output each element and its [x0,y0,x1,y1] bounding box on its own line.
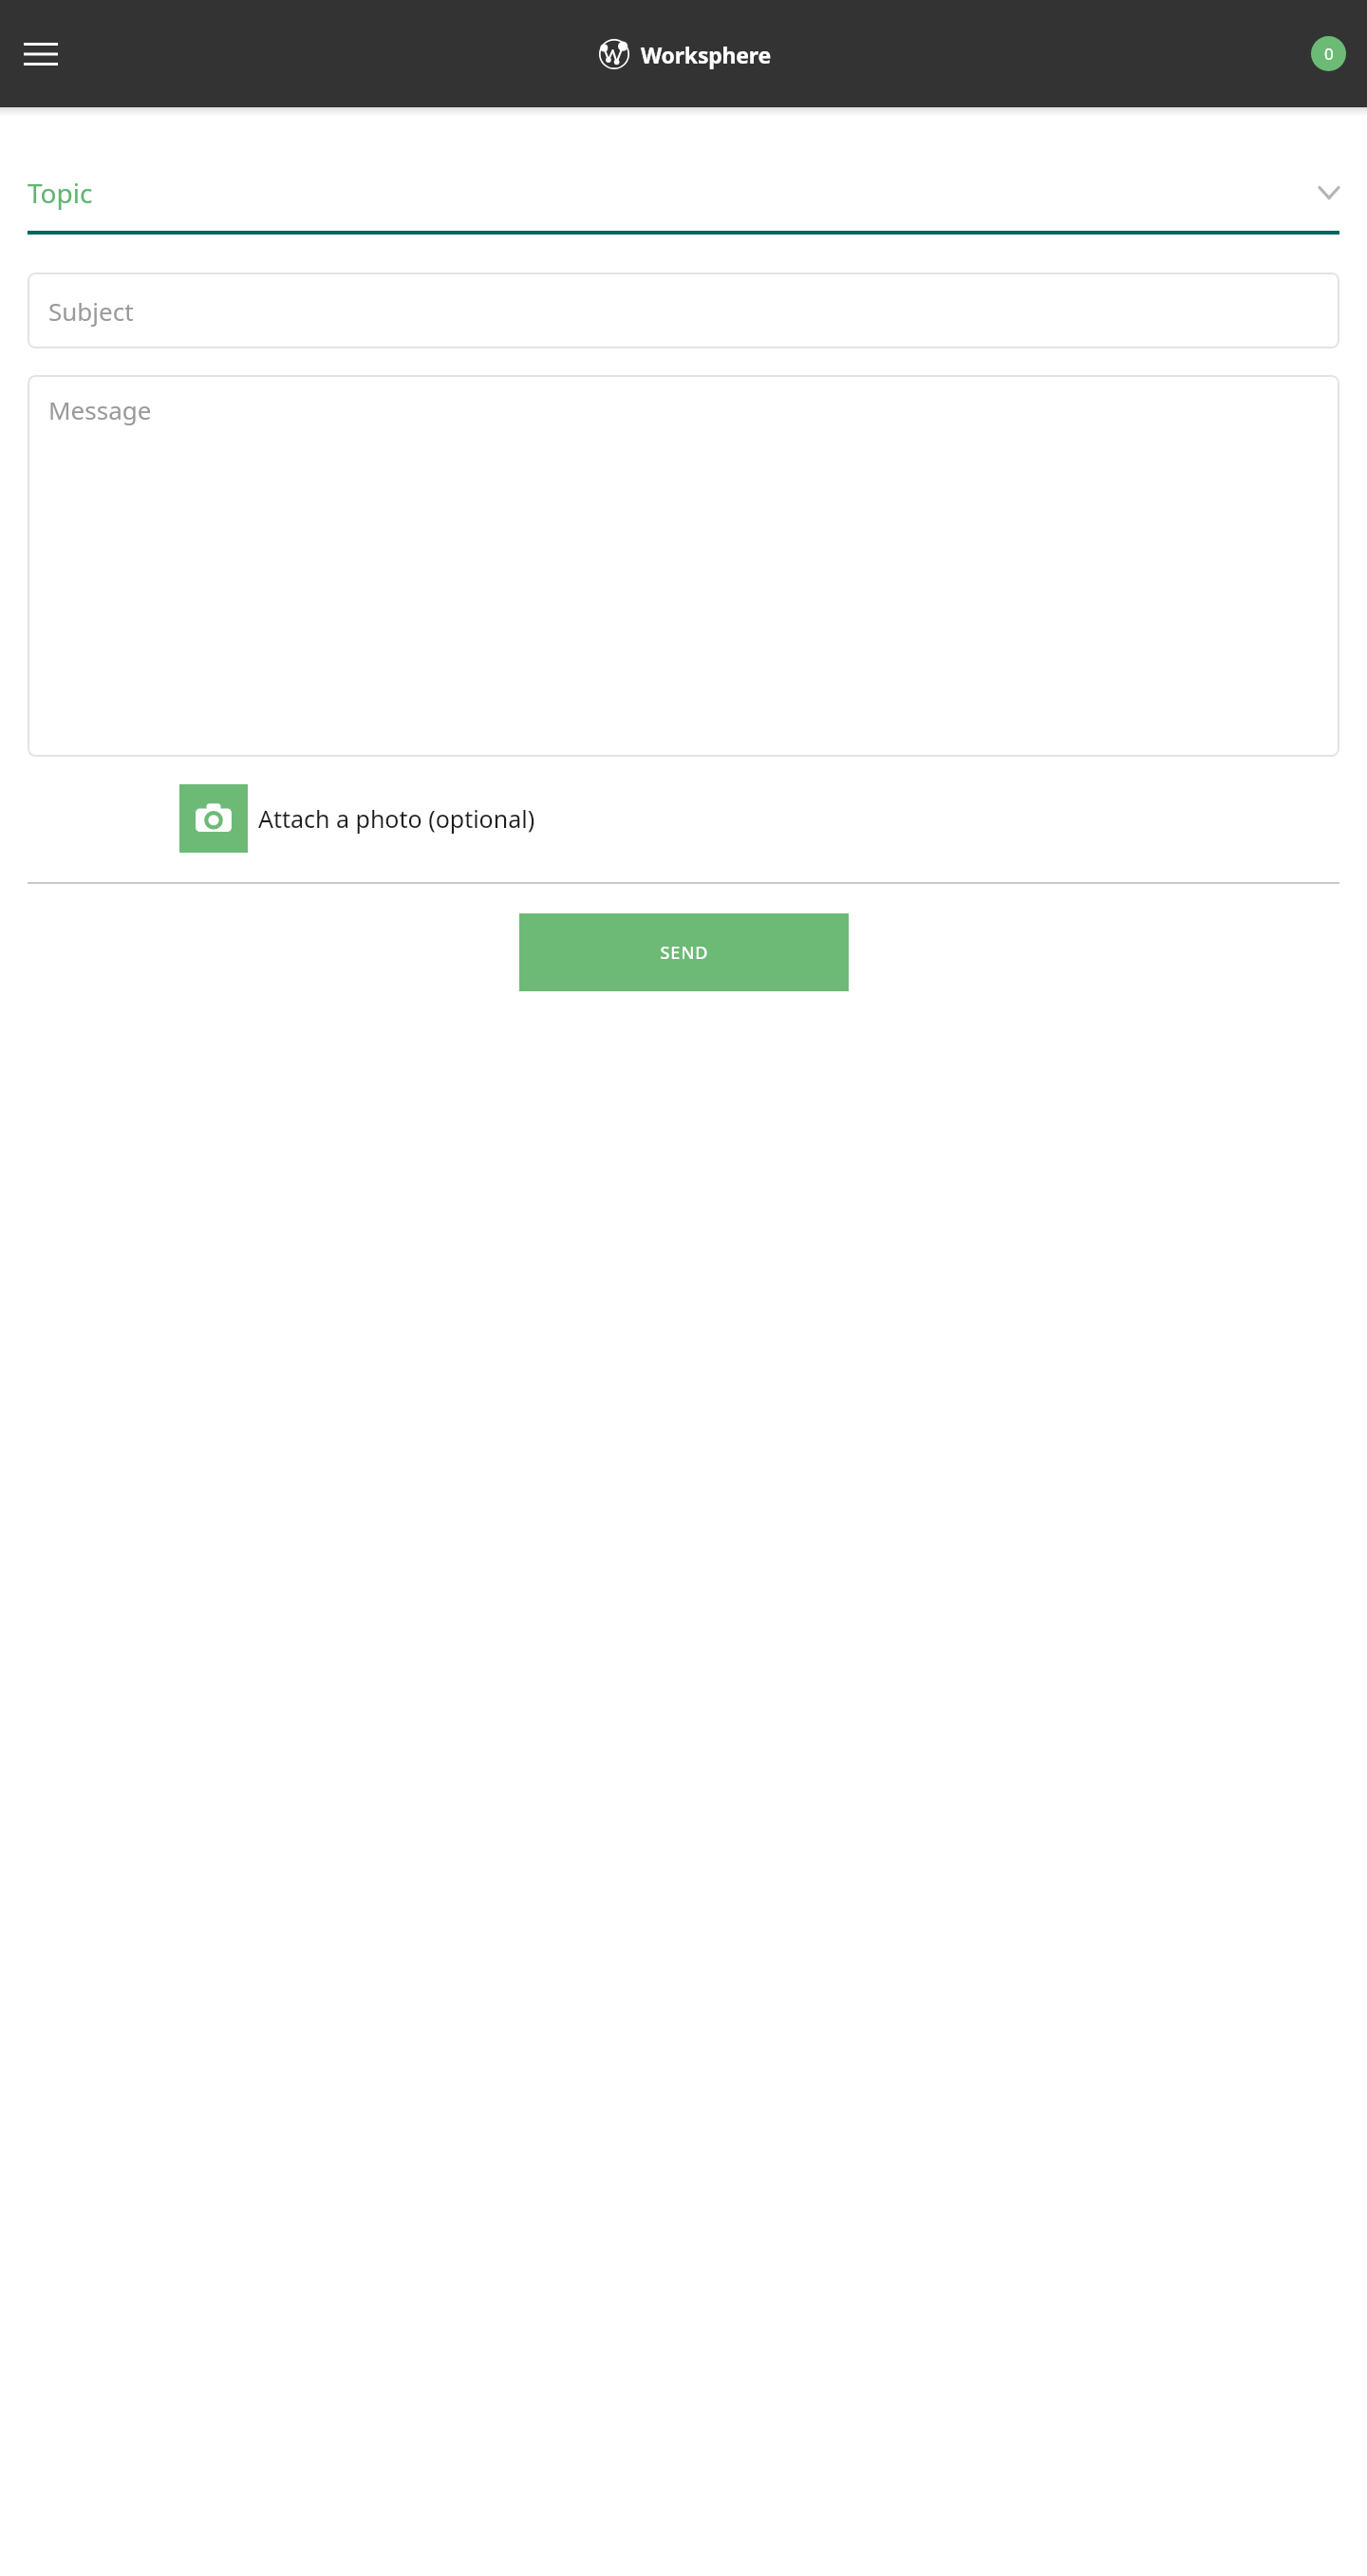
button[interactable]: Topic [0,175,1367,235]
button[interactable]: SEND [519,913,849,991]
staticText: SEND [660,941,709,965]
button[interactable]: Notifications, 0 items [1311,36,1346,71]
button[interactable]: Open navigation menu [19,32,63,76]
staticText: Worksphere [641,40,772,69]
button[interactable]: Subject [28,273,1339,348]
staticText: 0 [1324,43,1334,65]
staticText: Topic [28,175,93,211]
staticText: Subject [48,294,134,328]
button[interactable]: Worksphere [592,36,776,72]
staticText: Message [48,393,152,426]
button[interactable]: Attach a photo [179,784,248,853]
button[interactable]: Attach a photo (optional) [258,802,535,835]
button[interactable]: Message [28,375,1339,757]
